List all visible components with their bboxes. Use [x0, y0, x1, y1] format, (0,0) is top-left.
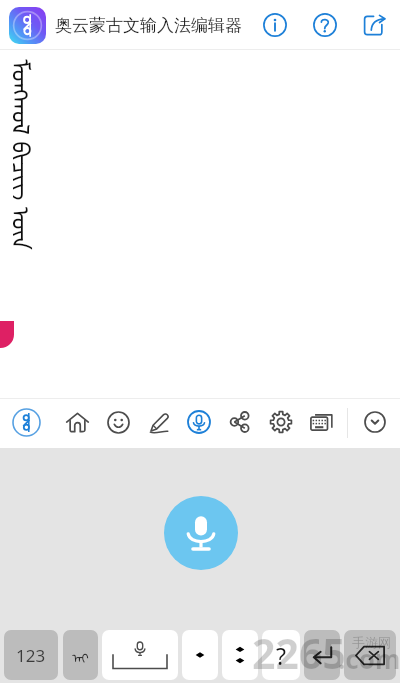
button[interactable]: Information — [258, 8, 292, 42]
button[interactable]: Voice input — [164, 496, 238, 570]
button[interactable]: Mongolian keyboard — [10, 406, 42, 438]
button[interactable]: Space — [102, 630, 178, 680]
button[interactable]: Settings — [265, 406, 297, 438]
button[interactable]: Emoji — [102, 406, 134, 438]
button[interactable]: Question mark — [262, 630, 300, 680]
staticText: 奥云蒙古文输入法编辑器 — [55, 15, 242, 36]
staticText: .com — [338, 641, 400, 676]
button[interactable]: Help — [308, 8, 342, 42]
button[interactable]: Handwriting — [143, 406, 175, 438]
button[interactable]: Share — [224, 406, 256, 438]
staticText: 手游网 — [352, 634, 391, 650]
button[interactable]: Enter — [304, 630, 340, 680]
button[interactable]: Share — [357, 8, 391, 42]
staticText: 123 — [16, 644, 46, 667]
button[interactable]: 123 keys — [4, 630, 58, 680]
button[interactable]: Collapse — [359, 406, 391, 438]
staticText: 2265 — [252, 625, 346, 681]
staticText: ᠮᠣᠩᠭᠣᠯ ᠪᠢᠴᠢᠭ ᠦᠨ ᠣᠷᠣᠭᠤᠯᠬᠤ ᠠᠷᠭ᠎ᠠ ᠵᠦᠢ ᠶᠢᠨ — [13, 59, 47, 359]
button[interactable]: Mongolian — [63, 630, 98, 680]
button[interactable]: Dot — [182, 630, 218, 680]
button[interactable]: Home — [61, 406, 93, 438]
button[interactable]: Backspace — [344, 630, 396, 680]
button[interactable]: Keyboard layout — [305, 406, 337, 438]
button[interactable]: Double dot — [222, 630, 258, 680]
button[interactable]: App icon — [9, 7, 46, 44]
button[interactable]: Voice — [183, 406, 215, 438]
staticText: ᠠᠢ — [72, 644, 89, 667]
staticText: ? — [276, 640, 286, 671]
